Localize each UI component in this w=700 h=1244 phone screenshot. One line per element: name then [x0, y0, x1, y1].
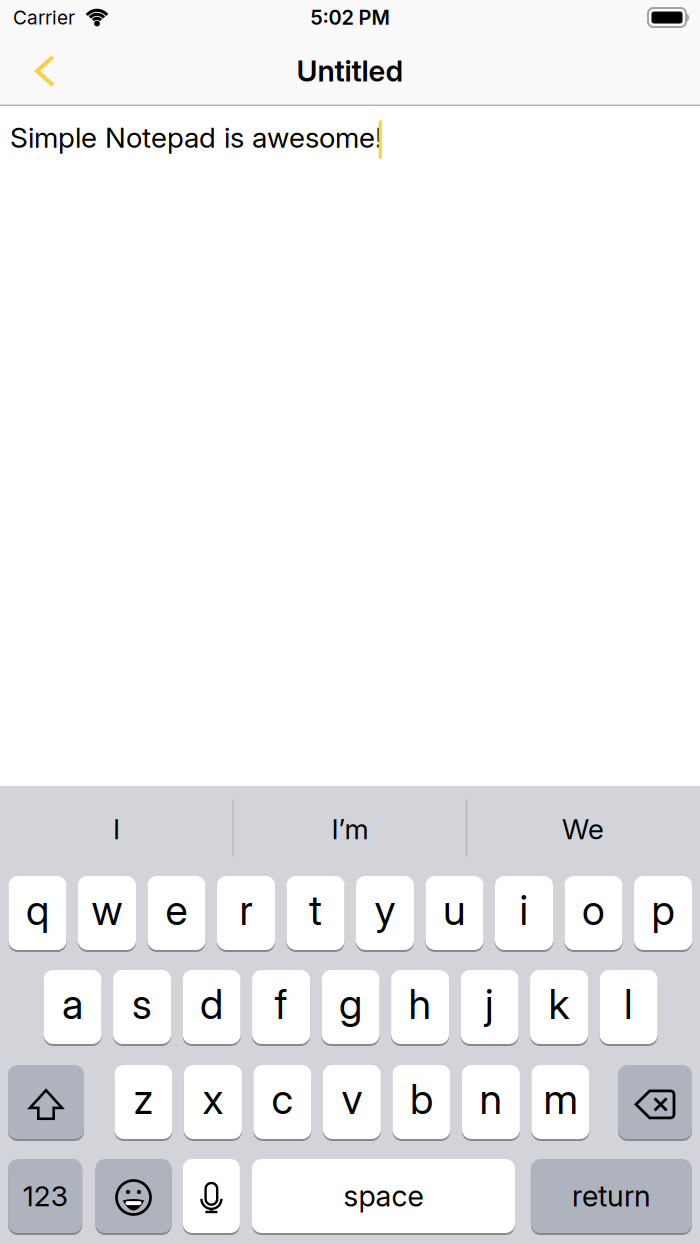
button[interactable]: I — [16, 800, 216, 858]
button[interactable]: h — [391, 969, 449, 1045]
button[interactable]: c — [253, 1064, 311, 1140]
button[interactable]: y — [356, 875, 414, 951]
button[interactable]: q — [8, 875, 66, 951]
staticText: I — [113, 812, 120, 846]
button[interactable]: l — [600, 969, 658, 1045]
button[interactable]: u — [425, 875, 483, 951]
button[interactable]: b — [392, 1064, 450, 1140]
staticText: g — [339, 979, 362, 1029]
staticText: c — [271, 1074, 293, 1124]
button[interactable]: o — [564, 875, 622, 951]
button[interactable]: r — [217, 875, 275, 951]
staticText: b — [410, 1074, 433, 1124]
staticText: u — [443, 885, 466, 935]
staticText: q — [26, 885, 49, 935]
button[interactable]: f — [252, 969, 310, 1045]
button[interactable]: Delete — [618, 1064, 692, 1140]
button[interactable]: Numbers — [8, 1158, 82, 1234]
staticText: We — [562, 812, 604, 846]
staticText: Simple Notepad is awesome! — [10, 120, 382, 154]
button[interactable]: We — [483, 800, 683, 858]
staticText: w — [91, 885, 122, 935]
button[interactable]: i — [495, 875, 553, 951]
staticText: m — [543, 1074, 577, 1124]
button[interactable]: p — [634, 875, 692, 951]
button[interactable]: e — [147, 875, 205, 951]
staticText: p — [651, 885, 674, 935]
button[interactable]: Back — [25, 45, 65, 97]
button[interactable]: t — [286, 875, 344, 951]
button[interactable]: m — [531, 1064, 589, 1140]
staticText: s — [132, 979, 152, 1029]
button[interactable]: I’m — [250, 800, 450, 858]
button[interactable]: z — [114, 1064, 172, 1140]
button[interactable]: Shift — [8, 1064, 84, 1140]
button[interactable]: Dictation — [183, 1158, 240, 1234]
staticText: j — [485, 979, 494, 1029]
button[interactable]: w — [78, 875, 136, 951]
staticText: d — [200, 979, 223, 1029]
button[interactable]: return — [531, 1158, 692, 1234]
staticText: e — [165, 885, 187, 935]
button[interactable]: v — [323, 1064, 381, 1140]
button[interactable]: x — [184, 1064, 242, 1140]
button[interactable]: s — [113, 969, 171, 1045]
staticText: t — [309, 885, 322, 935]
staticText: i — [519, 885, 528, 935]
button[interactable]: Emoji — [95, 1158, 171, 1234]
button[interactable]: j — [461, 969, 519, 1045]
button[interactable]: g — [322, 969, 380, 1045]
staticText: r — [239, 885, 252, 935]
button[interactable]: a — [44, 969, 102, 1045]
staticText: Untitled — [296, 53, 403, 89]
staticText: space — [343, 1178, 423, 1214]
staticText: v — [341, 1074, 362, 1124]
staticText: 5:02 PM — [310, 5, 389, 30]
staticText: k — [549, 979, 570, 1029]
staticText: 123 — [23, 1179, 68, 1213]
staticText: n — [479, 1074, 502, 1124]
button[interactable]: space — [252, 1158, 515, 1234]
staticText: I’m — [331, 812, 368, 846]
staticText: z — [133, 1074, 153, 1124]
staticText: l — [624, 979, 633, 1029]
staticText: y — [374, 885, 395, 935]
button[interactable]: k — [530, 969, 588, 1045]
staticText: return — [572, 1178, 651, 1214]
staticText: f — [275, 979, 288, 1029]
staticText: a — [62, 979, 83, 1029]
button[interactable]: d — [183, 969, 241, 1045]
staticText: Carrier — [13, 6, 75, 29]
button[interactable]: n — [462, 1064, 520, 1140]
staticText: o — [582, 885, 605, 935]
staticText: x — [202, 1074, 223, 1124]
staticText: h — [409, 979, 432, 1029]
